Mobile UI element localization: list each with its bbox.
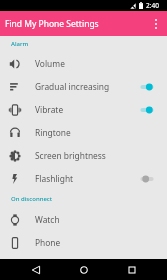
button[interactable]: Volume <box>0 52 167 75</box>
button[interactable]: Watch <box>0 208 167 231</box>
staticText: 2:40 <box>146 1 159 10</box>
staticText: Volume <box>35 58 65 69</box>
staticText: Gradual increasing <box>35 81 110 92</box>
button[interactable]: Vibrate <box>0 98 167 121</box>
staticText: Alarm <box>11 40 29 48</box>
staticText: Phone <box>35 237 61 248</box>
staticText: On disconnect <box>11 195 53 203</box>
button[interactable]: Screen brightness <box>0 144 167 167</box>
button[interactable]: Flashlight <box>0 167 167 190</box>
button[interactable]: Ringtone <box>0 121 167 144</box>
staticText: Find My Phone Settings <box>5 18 99 30</box>
button[interactable]: More options <box>145 13 167 35</box>
staticText: Screen brightness <box>35 150 106 161</box>
staticText: Ringtone <box>35 127 71 138</box>
button[interactable]: Back <box>26 260 46 280</box>
button[interactable]: Recents <box>122 260 142 280</box>
staticText: Vibrate <box>35 104 64 115</box>
button[interactable]: Gradual increasing <box>0 75 167 98</box>
button[interactable]: Phone <box>0 231 167 254</box>
staticText: Watch <box>35 214 60 225</box>
staticText: Flashlight <box>35 173 74 184</box>
button[interactable]: Home <box>74 260 94 280</box>
